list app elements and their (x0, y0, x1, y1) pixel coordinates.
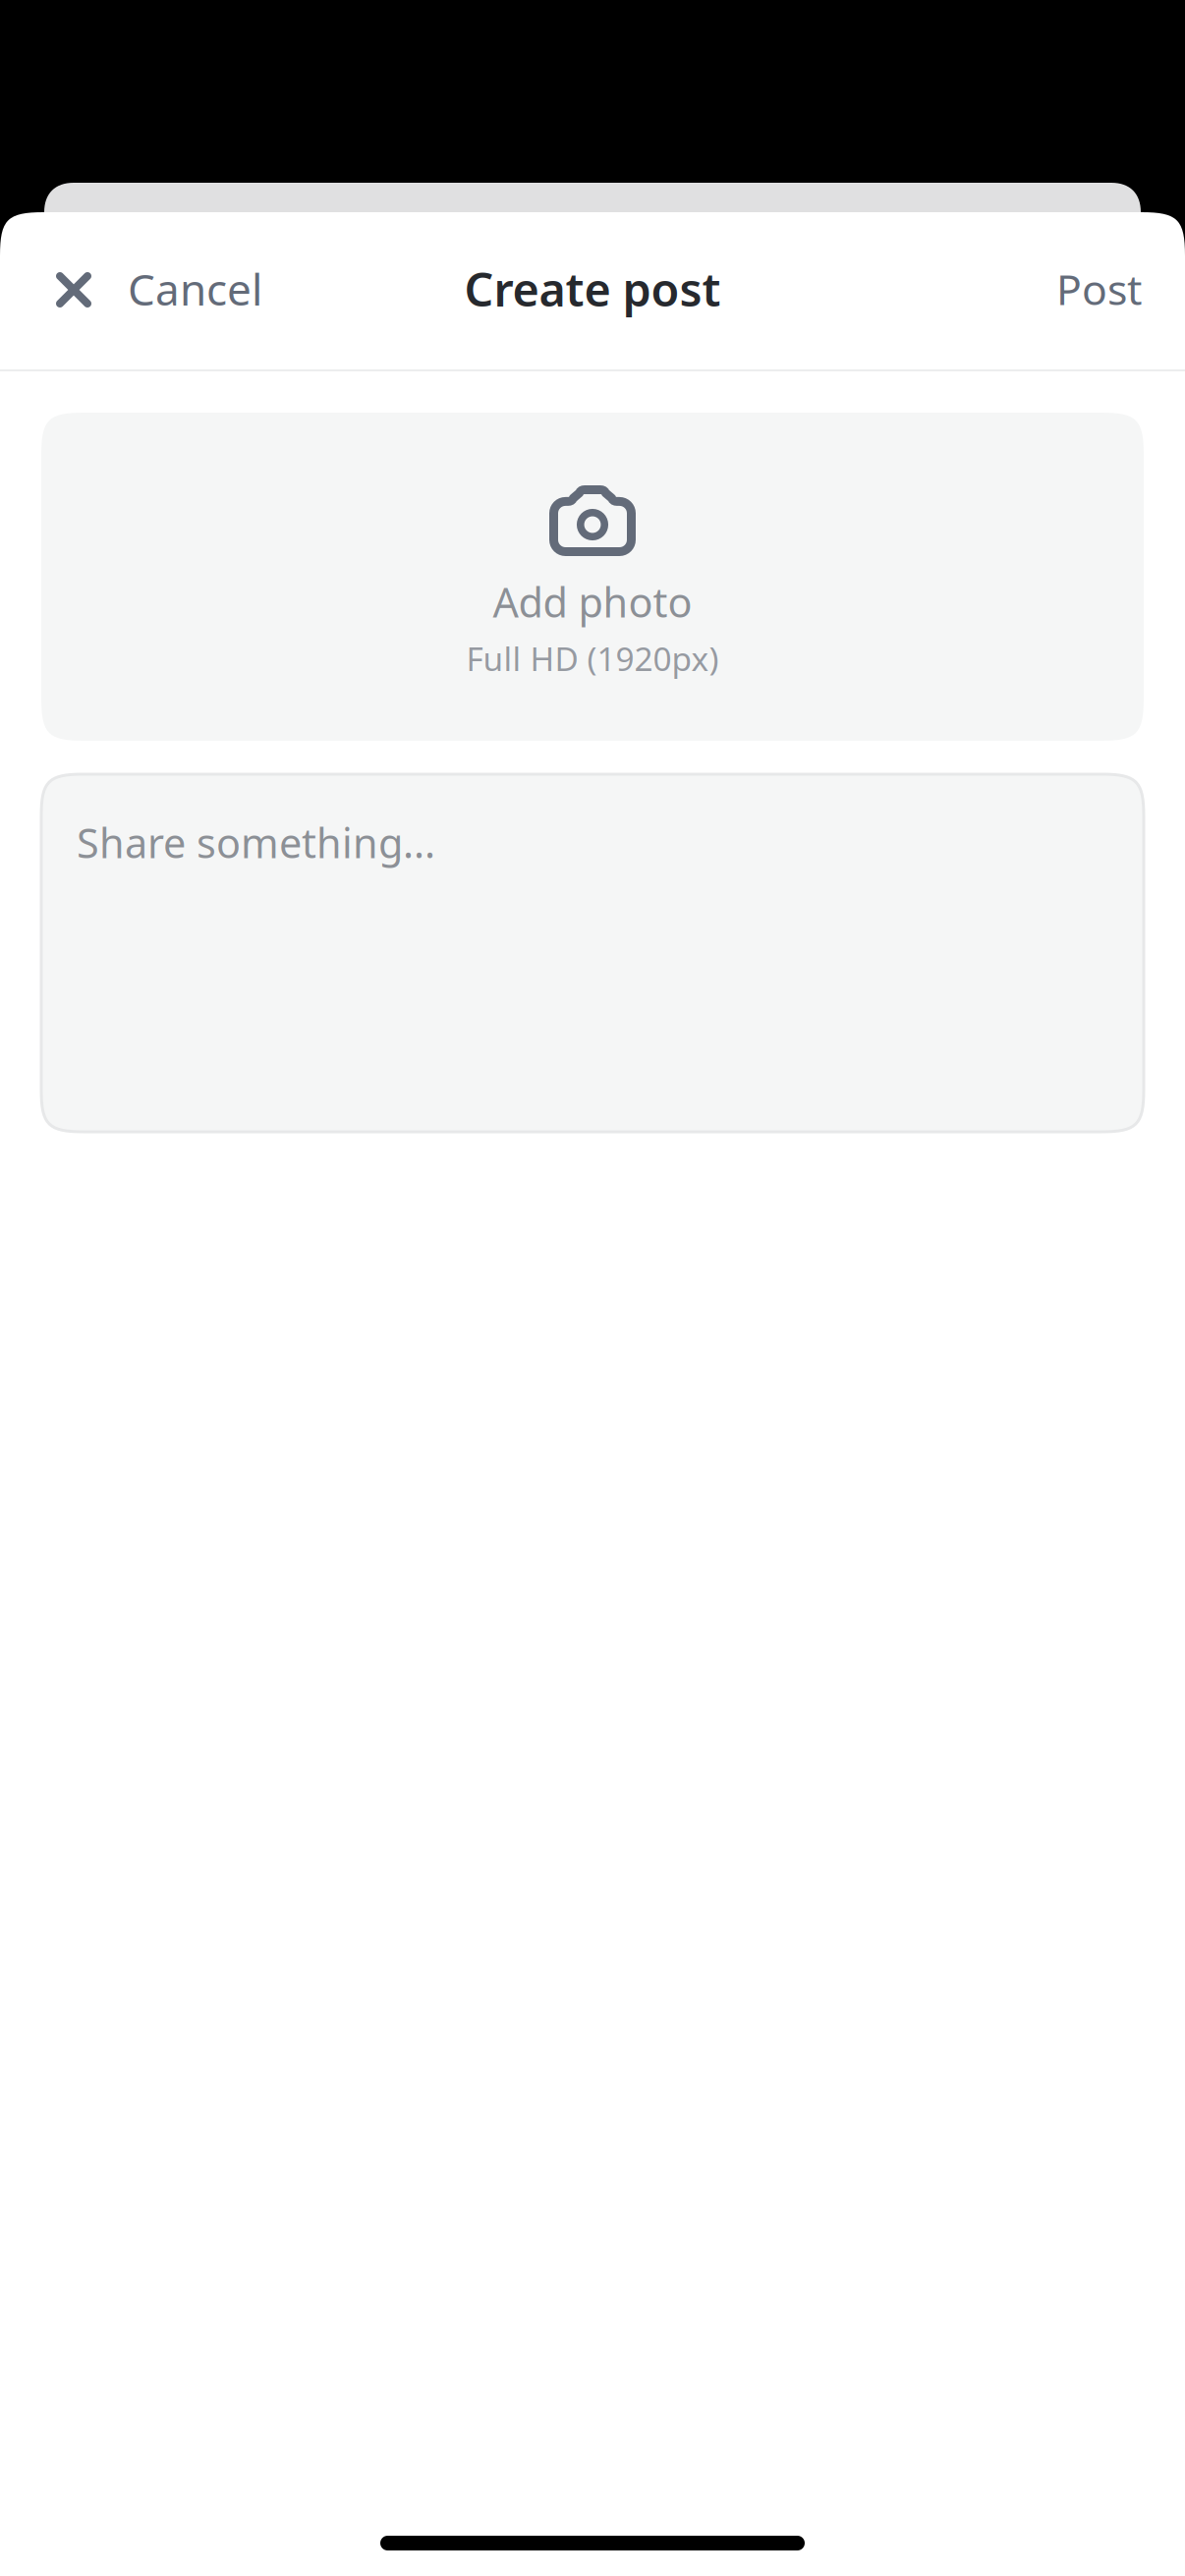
button[interactable]: Cancel (0, 212, 286, 369)
staticText: Create post (464, 258, 721, 319)
button[interactable]: Post (1033, 212, 1185, 369)
staticText: Share something... (77, 815, 435, 869)
staticText: Post (1056, 261, 1142, 317)
staticText: Add photo (493, 575, 692, 629)
button[interactable]: Add photo (41, 413, 1144, 741)
button[interactable]: Share something (41, 774, 1144, 1132)
staticText: Cancel (128, 260, 262, 318)
staticText: Full HD (1920px) (466, 637, 719, 680)
